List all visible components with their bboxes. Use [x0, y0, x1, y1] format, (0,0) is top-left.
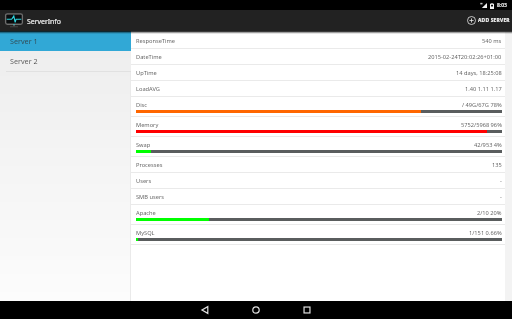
- staticText: 540 ms: [482, 37, 502, 45]
- button[interactable]: Server 1: [0, 31, 131, 51]
- staticText: 135: [492, 161, 502, 169]
- staticText: UpTime: [136, 69, 157, 77]
- button[interactable]: Processes: [131, 157, 505, 173]
- staticText: Server 1: [10, 36, 38, 46]
- staticText: Memory: [136, 121, 159, 129]
- staticText: 2/10 20%: [477, 209, 502, 217]
- staticText: ADD SERVER: [478, 17, 510, 24]
- staticText: Apache: [136, 209, 156, 217]
- staticText: Processes: [136, 161, 163, 169]
- button[interactable]: DateTime: [131, 49, 505, 65]
- button[interactable]: Memory: [131, 117, 505, 137]
- button[interactable]: Home: [249, 303, 263, 317]
- button[interactable]: Users: [131, 173, 505, 189]
- staticText: 42/953 4%: [474, 141, 502, 149]
- staticText: DateTime: [136, 53, 162, 61]
- staticText: 1.40 1.11 1.17: [465, 85, 502, 93]
- staticText: -: [500, 177, 502, 185]
- staticText: Server 2: [10, 56, 38, 66]
- staticText: Users: [136, 177, 152, 185]
- button[interactable]: Recent apps: [300, 303, 314, 317]
- button[interactable]: SMB users: [131, 189, 505, 205]
- staticText: SMB users: [136, 193, 164, 201]
- button[interactable]: Swap: [131, 137, 505, 157]
- staticText: 1/151 0.66%: [469, 229, 502, 237]
- button[interactable]: UpTime: [131, 65, 505, 81]
- staticText: -: [500, 193, 502, 201]
- button[interactable]: ADD SERVER: [461, 12, 512, 29]
- staticText: 2015-02-24T20:02:26+01:00: [428, 53, 502, 61]
- staticText: Swap: [136, 141, 151, 149]
- staticText: Disc: [136, 101, 148, 109]
- staticText: ResponseTime: [136, 37, 176, 45]
- button[interactable]: MySQL: [131, 225, 505, 245]
- staticText: 14 days, 18:25:08: [456, 69, 502, 77]
- staticText: MySQL: [136, 229, 155, 237]
- button[interactable]: Apache: [131, 205, 505, 225]
- staticText: / 49G/67G 78%: [462, 101, 502, 109]
- button[interactable]: ResponseTime: [131, 33, 505, 49]
- staticText: 8:03: [497, 2, 507, 9]
- button[interactable]: Disc: [131, 97, 505, 117]
- staticText: LoadAVG: [136, 85, 161, 93]
- button[interactable]: Server 2: [0, 51, 131, 71]
- button[interactable]: LoadAVG: [131, 81, 505, 97]
- staticText: 5752/5968 96%: [461, 121, 502, 129]
- staticText: ServerInfo: [27, 17, 61, 26]
- button[interactable]: Back: [198, 303, 212, 317]
